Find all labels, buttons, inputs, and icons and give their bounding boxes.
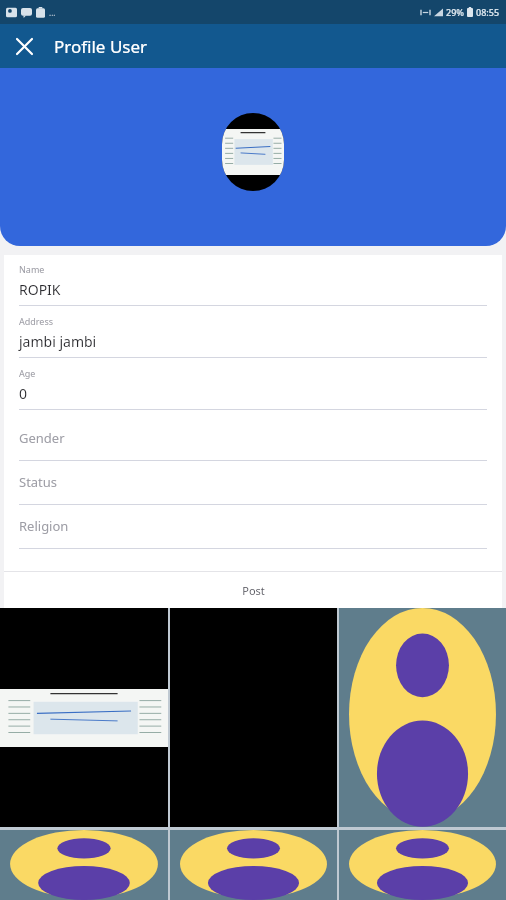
button[interactable]: Age (19, 367, 487, 419)
button[interactable]: Gender (19, 419, 487, 463)
button[interactable]: Status (19, 463, 487, 507)
staticText: Post (242, 583, 265, 598)
staticText: Religion (19, 517, 69, 535)
button[interactable]: Post photo 5 (170, 830, 337, 900)
staticText: 0 (19, 384, 28, 403)
button[interactable]: Religion (19, 507, 487, 551)
button[interactable]: Post photo 6 (339, 830, 506, 900)
button[interactable]: Close (6, 28, 42, 64)
staticText: Name (19, 263, 45, 275)
staticText: Address (19, 315, 54, 327)
staticText: ROPIK (19, 280, 61, 299)
staticText: 29% (446, 6, 464, 18)
staticText: Status (19, 473, 58, 491)
button[interactable]: Post photo 4 (0, 830, 168, 900)
button[interactable]: Profile photo (222, 113, 284, 191)
staticText: jambi jambi (19, 332, 97, 351)
staticText: Profile User (54, 35, 148, 58)
button[interactable]: Post (4, 572, 502, 608)
button[interactable]: Address (19, 315, 487, 367)
button[interactable]: Post photo 1 (0, 608, 168, 827)
staticText: Age (19, 367, 36, 379)
button[interactable]: Name (19, 263, 487, 315)
button[interactable]: Post photo 3 (339, 608, 506, 827)
staticText: 08:55 (476, 6, 500, 18)
staticText: Gender (19, 429, 65, 447)
staticText: ... (49, 7, 56, 18)
